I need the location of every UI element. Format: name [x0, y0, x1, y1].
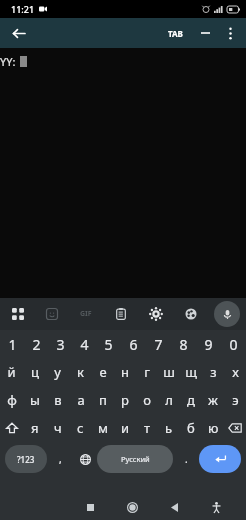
staticText: TAB	[168, 28, 183, 39]
button[interactable]: Accessibility	[204, 495, 228, 519]
button[interactable]: Theme	[179, 302, 203, 326]
staticText: э	[232, 391, 239, 409]
button[interactable]: а	[69, 386, 92, 414]
button[interactable]: 9	[196, 330, 221, 358]
button[interactable]: 8	[171, 330, 196, 358]
staticText: щ	[185, 363, 197, 381]
button[interactable]: Stickers	[40, 302, 64, 326]
button[interactable]: т	[136, 414, 158, 442]
button[interactable]: й	[0, 358, 23, 386]
staticText: ч	[54, 419, 62, 437]
button[interactable]: ш	[158, 358, 180, 386]
button[interactable]: ю	[202, 414, 224, 442]
staticText: б	[187, 419, 195, 437]
button[interactable]: 7	[146, 330, 171, 358]
staticText: ц	[31, 363, 39, 381]
staticText: а	[77, 391, 85, 409]
staticText: е	[99, 363, 107, 381]
staticText: п	[99, 391, 107, 409]
button[interactable]: Recents	[78, 495, 102, 519]
button[interactable]: м	[92, 414, 114, 442]
staticText: з	[210, 363, 217, 381]
button[interactable]: Clipboard	[109, 302, 133, 326]
button[interactable]: ?123	[5, 445, 47, 473]
staticText: 1	[8, 335, 17, 354]
button[interactable]: 4	[72, 330, 96, 358]
button[interactable]: в	[46, 386, 69, 414]
button[interactable]: More options	[218, 21, 242, 45]
button[interactable]: Keyboard switcher	[6, 302, 30, 326]
staticText: н	[121, 363, 129, 381]
button[interactable]: Change language	[73, 445, 97, 473]
button[interactable]: о	[136, 386, 158, 414]
staticText: х	[232, 363, 239, 381]
button[interactable]: 1	[0, 330, 24, 358]
staticText: YY:	[0, 54, 16, 69]
staticText: 9	[204, 335, 213, 354]
staticText: GIF	[80, 309, 92, 319]
button[interactable]: ф	[0, 386, 23, 414]
staticText: с	[77, 419, 84, 437]
staticText: у	[54, 363, 61, 381]
staticText: в	[54, 391, 62, 409]
staticText: я	[31, 419, 39, 437]
button[interactable]: р	[114, 386, 136, 414]
button[interactable]: Minimize	[194, 22, 216, 44]
button[interactable]: Backspace	[224, 414, 246, 442]
button[interactable]: Shift	[0, 414, 23, 442]
button[interactable]: 5	[96, 330, 121, 358]
button[interactable]: ч	[46, 414, 69, 442]
staticText: 5	[104, 335, 113, 354]
button[interactable]: з	[202, 358, 224, 386]
button[interactable]: Русский	[97, 445, 173, 473]
button[interactable]: Home	[120, 495, 144, 519]
button[interactable]: ц	[23, 358, 46, 386]
staticText: ш	[163, 363, 175, 381]
button[interactable]: д	[180, 386, 202, 414]
button[interactable]: ,	[47, 445, 73, 473]
staticText: ф	[7, 391, 17, 409]
button[interactable]: Settings	[144, 302, 168, 326]
button[interactable]: б	[180, 414, 202, 442]
staticText: 3	[56, 335, 65, 354]
button[interactable]: TAB	[163, 23, 188, 44]
button[interactable]: х	[224, 358, 246, 386]
button[interactable]: 3	[48, 330, 72, 358]
button[interactable]: 6	[121, 330, 146, 358]
button[interactable]: ь	[158, 414, 180, 442]
button[interactable]: щ	[180, 358, 202, 386]
staticText: м	[98, 419, 108, 437]
button[interactable]: ж	[202, 386, 224, 414]
button[interactable]: л	[158, 386, 180, 414]
button[interactable]: ы	[23, 386, 46, 414]
button[interactable]: к	[69, 358, 92, 386]
button[interactable]: Back	[6, 21, 30, 45]
staticText: 11:21	[11, 3, 35, 15]
button[interactable]: Voice input	[214, 301, 240, 327]
button[interactable]: н	[114, 358, 136, 386]
staticText: т	[144, 419, 151, 437]
button[interactable]: 2	[24, 330, 48, 358]
staticText: о	[143, 391, 151, 409]
button[interactable]: у	[46, 358, 69, 386]
staticText: к	[77, 363, 84, 381]
staticText: р	[121, 391, 129, 409]
button[interactable]: э	[224, 386, 246, 414]
staticText: 0	[229, 335, 238, 354]
button[interactable]: п	[92, 386, 114, 414]
button[interactable]: г	[136, 358, 158, 386]
button[interactable]: .	[173, 445, 199, 473]
button[interactable]: е	[92, 358, 114, 386]
staticText: .	[185, 452, 188, 466]
button[interactable]: Back	[162, 495, 186, 519]
button[interactable]: я	[23, 414, 46, 442]
button[interactable]: с	[69, 414, 92, 442]
button[interactable]: GIF	[74, 302, 98, 326]
staticText: й	[7, 363, 16, 381]
staticText: 6	[129, 335, 138, 354]
button[interactable]: и	[114, 414, 136, 442]
staticText: 2	[32, 335, 41, 354]
button[interactable]: 0	[221, 330, 246, 358]
staticText: 7	[154, 335, 163, 354]
button[interactable]: Enter	[199, 445, 241, 473]
